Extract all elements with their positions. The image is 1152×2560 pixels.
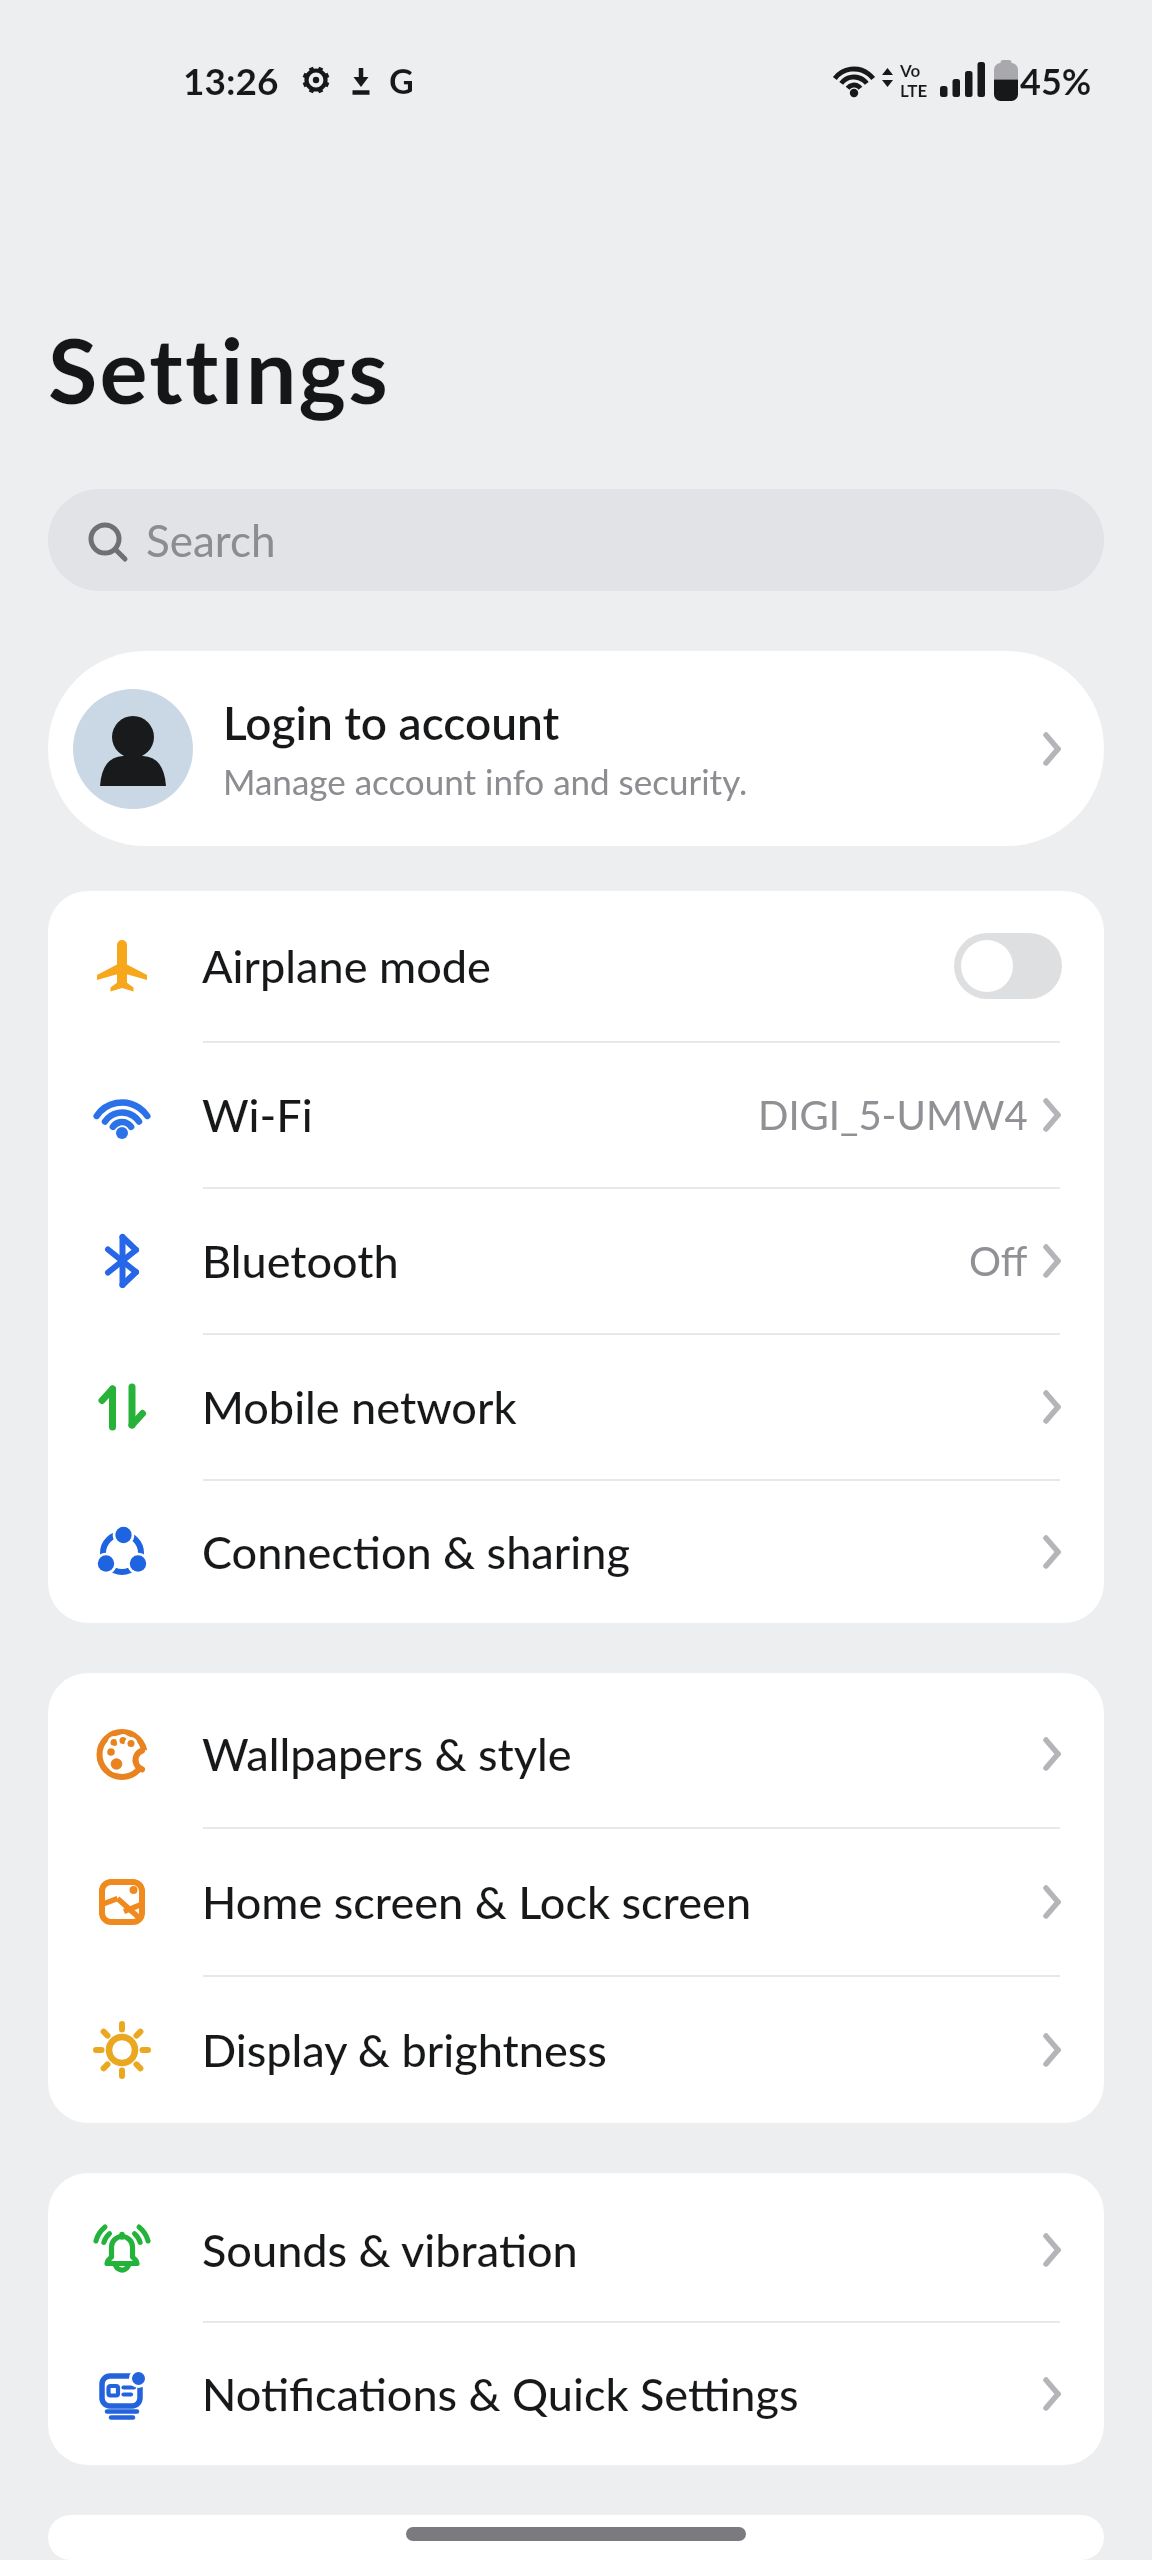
staticText: Connection & sharing [202,1525,630,1579]
staticText: Settings [48,315,391,423]
button[interactable]: Display & brightness [48,1977,1104,2123]
staticText: Vo [900,60,921,80]
staticText: Airplane mode [202,939,491,993]
staticText: DIGI_5-UMW4 [758,1091,1028,1139]
button[interactable]: Sounds & vibration [48,2179,1104,2321]
staticText: Notifications & Quick Settings [202,2367,799,2421]
button[interactable]: Login to account [48,651,1104,846]
button[interactable]: Wallpapers & style [48,1681,1104,1827]
staticText: Wallpapers & style [202,1727,572,1781]
button[interactable]: Connection & sharing [48,1481,1104,1623]
button[interactable]: Mobile network [48,1335,1104,1479]
button[interactable]: Search [48,489,1104,591]
button[interactable]: Notifications & Quick Settings [48,2323,1104,2465]
staticText: G [389,60,414,101]
staticText: Search [146,514,276,567]
button[interactable]: Airplane mode [48,891,1104,1041]
staticText: Wi-Fi [202,1088,313,1142]
button[interactable]: Wi-Fi [48,1043,1104,1187]
button[interactable]: Home screen & Lock screen [48,1829,1104,1975]
staticText: Manage account info and security. [223,760,748,802]
staticText: LTE [900,80,928,100]
staticText: 45% [1020,59,1092,102]
staticText: Home screen & Lock screen [202,1875,752,1929]
staticText: Display & brightness [202,2023,607,2077]
staticText: Bluetooth [202,1234,399,1288]
button[interactable] [954,933,1062,999]
staticText: 13:26 [183,58,279,102]
staticText: Login to account [223,695,560,750]
staticText: Sounds & vibration [202,2223,578,2277]
button[interactable]: Bluetooth [48,1189,1104,1333]
staticText: Mobile network [202,1380,517,1434]
staticText: Off [969,1237,1028,1285]
